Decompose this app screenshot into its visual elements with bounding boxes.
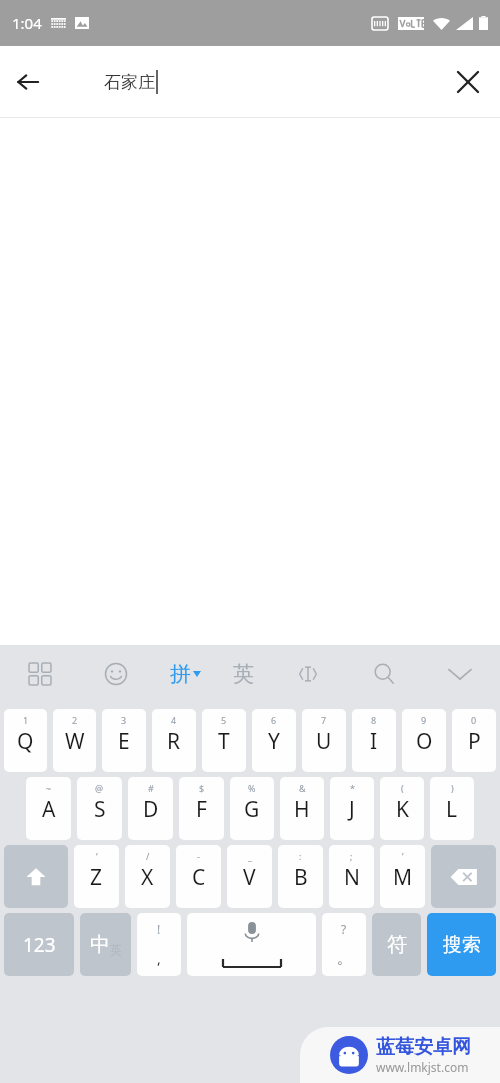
- staticText: Q: [17, 727, 34, 756]
- staticText: I: [370, 727, 378, 756]
- staticText: 6: [271, 714, 277, 726]
- staticText: T: [218, 727, 230, 756]
- staticText: 搜索: [443, 933, 481, 957]
- staticText: A: [42, 795, 56, 824]
- button[interactable]: ‘: [74, 845, 119, 908]
- button[interactable]: -: [176, 845, 221, 908]
- staticText: /: [146, 850, 150, 862]
- button[interactable]: _: [227, 845, 272, 908]
- button[interactable]: 8: [352, 709, 396, 772]
- staticText: O: [416, 727, 433, 756]
- staticText: K: [396, 795, 409, 824]
- button[interactable]: 拼: [170, 652, 201, 696]
- button[interactable]: Panels: [18, 652, 62, 696]
- button[interactable]: Hide keyboard: [438, 652, 482, 696]
- button[interactable]: Space: [187, 913, 316, 976]
- button[interactable]: 中: [80, 913, 131, 976]
- staticText: ‘: [96, 850, 98, 862]
- staticText: 3: [121, 714, 127, 726]
- button[interactable]: %: [230, 777, 274, 840]
- staticText: &: [299, 782, 306, 794]
- staticText: 123: [23, 932, 56, 958]
- staticText: 。: [337, 950, 351, 968]
- button[interactable]: /: [125, 845, 170, 908]
- button[interactable]: ?: [322, 913, 366, 976]
- button[interactable]: Delete: [431, 845, 496, 908]
- button[interactable]: ~: [26, 777, 71, 840]
- button[interactable]: 2: [53, 709, 96, 772]
- staticText: 0: [471, 714, 477, 726]
- button[interactable]: :: [278, 845, 323, 908]
- button[interactable]: (: [380, 777, 424, 840]
- staticText: S: [94, 795, 106, 824]
- button[interactable]: $: [179, 777, 224, 840]
- button[interactable]: 符: [372, 913, 421, 976]
- button[interactable]: 0: [452, 709, 496, 772]
- staticText: #: [148, 782, 154, 794]
- button[interactable]: ): [430, 777, 474, 840]
- button[interactable]: ;: [329, 845, 374, 908]
- button[interactable]: 7: [302, 709, 346, 772]
- button[interactable]: 9: [402, 709, 446, 772]
- button[interactable]: 1: [4, 709, 47, 772]
- staticText: :: [299, 850, 302, 862]
- staticText: 英: [110, 942, 122, 957]
- staticText: 9: [421, 714, 427, 726]
- button[interactable]: ’: [380, 845, 425, 908]
- staticText: V: [243, 863, 256, 892]
- staticText: R: [167, 727, 181, 756]
- staticText: B: [294, 863, 308, 892]
- button[interactable]: 123: [4, 913, 74, 976]
- staticText: N: [344, 863, 360, 892]
- staticText: W: [65, 727, 85, 756]
- button[interactable]: Shift: [4, 845, 68, 908]
- staticText: X: [141, 863, 154, 892]
- staticText: 石家庄: [104, 72, 155, 93]
- button[interactable]: !: [137, 913, 181, 976]
- staticText: %: [248, 782, 256, 794]
- button[interactable]: *: [330, 777, 374, 840]
- staticText: 拼: [170, 661, 191, 687]
- button[interactable]: Emoji: [94, 652, 138, 696]
- staticText: -: [197, 850, 200, 862]
- staticText: ~: [46, 782, 52, 794]
- button[interactable]: Search: [362, 652, 406, 696]
- staticText: U: [316, 727, 332, 756]
- staticText: L: [446, 795, 458, 824]
- button[interactable]: 6: [252, 709, 296, 772]
- staticText: Y: [268, 727, 280, 756]
- staticText: 5: [221, 714, 227, 726]
- button[interactable]: 4: [152, 709, 196, 772]
- staticText: www.lmkjst.com: [376, 1059, 469, 1075]
- staticText: 中: [90, 932, 110, 957]
- staticText: E: [118, 727, 130, 756]
- button[interactable]: #: [128, 777, 173, 840]
- button[interactable]: Cursor: [286, 652, 330, 696]
- button[interactable]: 5: [202, 709, 246, 772]
- staticText: (: [401, 782, 404, 794]
- button[interactable]: &: [280, 777, 324, 840]
- staticText: @: [95, 782, 104, 794]
- staticText: !: [157, 921, 161, 937]
- staticText: *: [350, 782, 355, 794]
- staticText: ;: [350, 850, 353, 862]
- button[interactable]: 搜索: [427, 913, 496, 976]
- staticText: 符: [387, 932, 407, 957]
- staticText: 4: [171, 714, 177, 726]
- staticText: $: [199, 782, 205, 794]
- staticText: 2: [72, 714, 78, 726]
- staticText: D: [143, 795, 159, 824]
- staticText: F: [196, 795, 207, 824]
- staticText: _: [248, 850, 252, 862]
- button[interactable]: Clear: [440, 54, 496, 110]
- staticText: 蓝莓安卓网: [376, 1035, 471, 1059]
- button[interactable]: 英: [233, 652, 254, 696]
- staticText: G: [244, 795, 260, 824]
- button[interactable]: 3: [102, 709, 146, 772]
- staticText: 1:04: [12, 13, 42, 33]
- button[interactable]: Back: [0, 54, 56, 110]
- button[interactable]: @: [77, 777, 122, 840]
- staticText: 英: [233, 661, 254, 687]
- staticText: 1: [23, 714, 29, 726]
- staticText: ,: [157, 949, 161, 968]
